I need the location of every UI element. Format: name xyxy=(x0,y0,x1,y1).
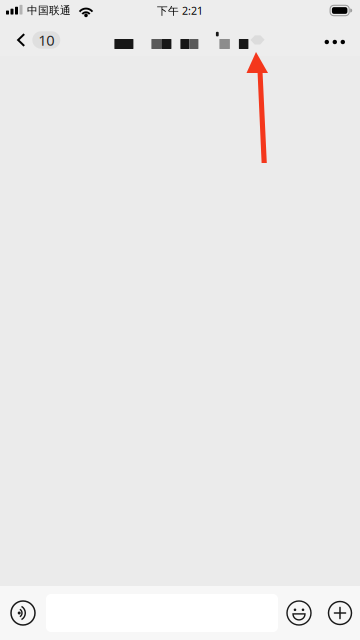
button[interactable]: Hold to talk xyxy=(0,586,46,640)
staticText: 10 xyxy=(38,30,54,50)
button[interactable]: Emoji xyxy=(278,586,320,640)
staticText: 下午 2:21 xyxy=(157,3,203,18)
button[interactable]: More xyxy=(311,24,360,56)
button[interactable]: More xyxy=(320,586,360,640)
staticText: 中国联通 xyxy=(27,4,71,17)
button[interactable]: 10 xyxy=(0,24,72,56)
